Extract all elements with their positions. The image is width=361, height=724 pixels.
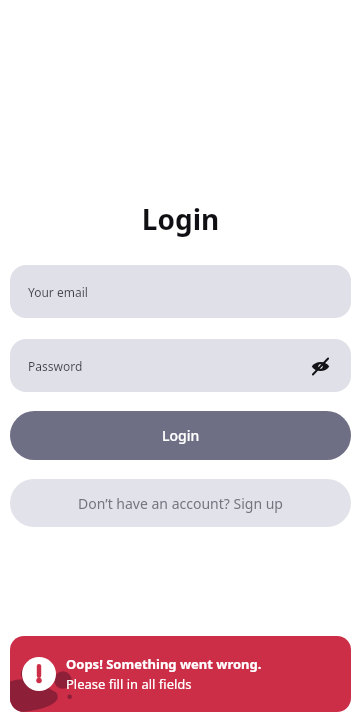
- button[interactable]: Oops! Something went wrong.: [10, 636, 351, 712]
- button[interactable]: Show password: [307, 353, 333, 379]
- staticText: Login: [10, 200, 351, 238]
- button[interactable]: Login: [10, 411, 351, 460]
- staticText: Please fill in all fields: [66, 675, 192, 693]
- staticText: Your email: [28, 284, 88, 300]
- button[interactable]: Password: [10, 339, 351, 392]
- staticText: Oops! Something went wrong.: [66, 655, 262, 673]
- staticText: Password: [28, 358, 83, 374]
- staticText: Don’t have an account? Sign up: [78, 494, 283, 513]
- staticText: Login: [162, 426, 200, 445]
- button[interactable]: Don’t have an account? Sign up: [10, 479, 351, 527]
- button[interactable]: Your email: [10, 265, 351, 318]
